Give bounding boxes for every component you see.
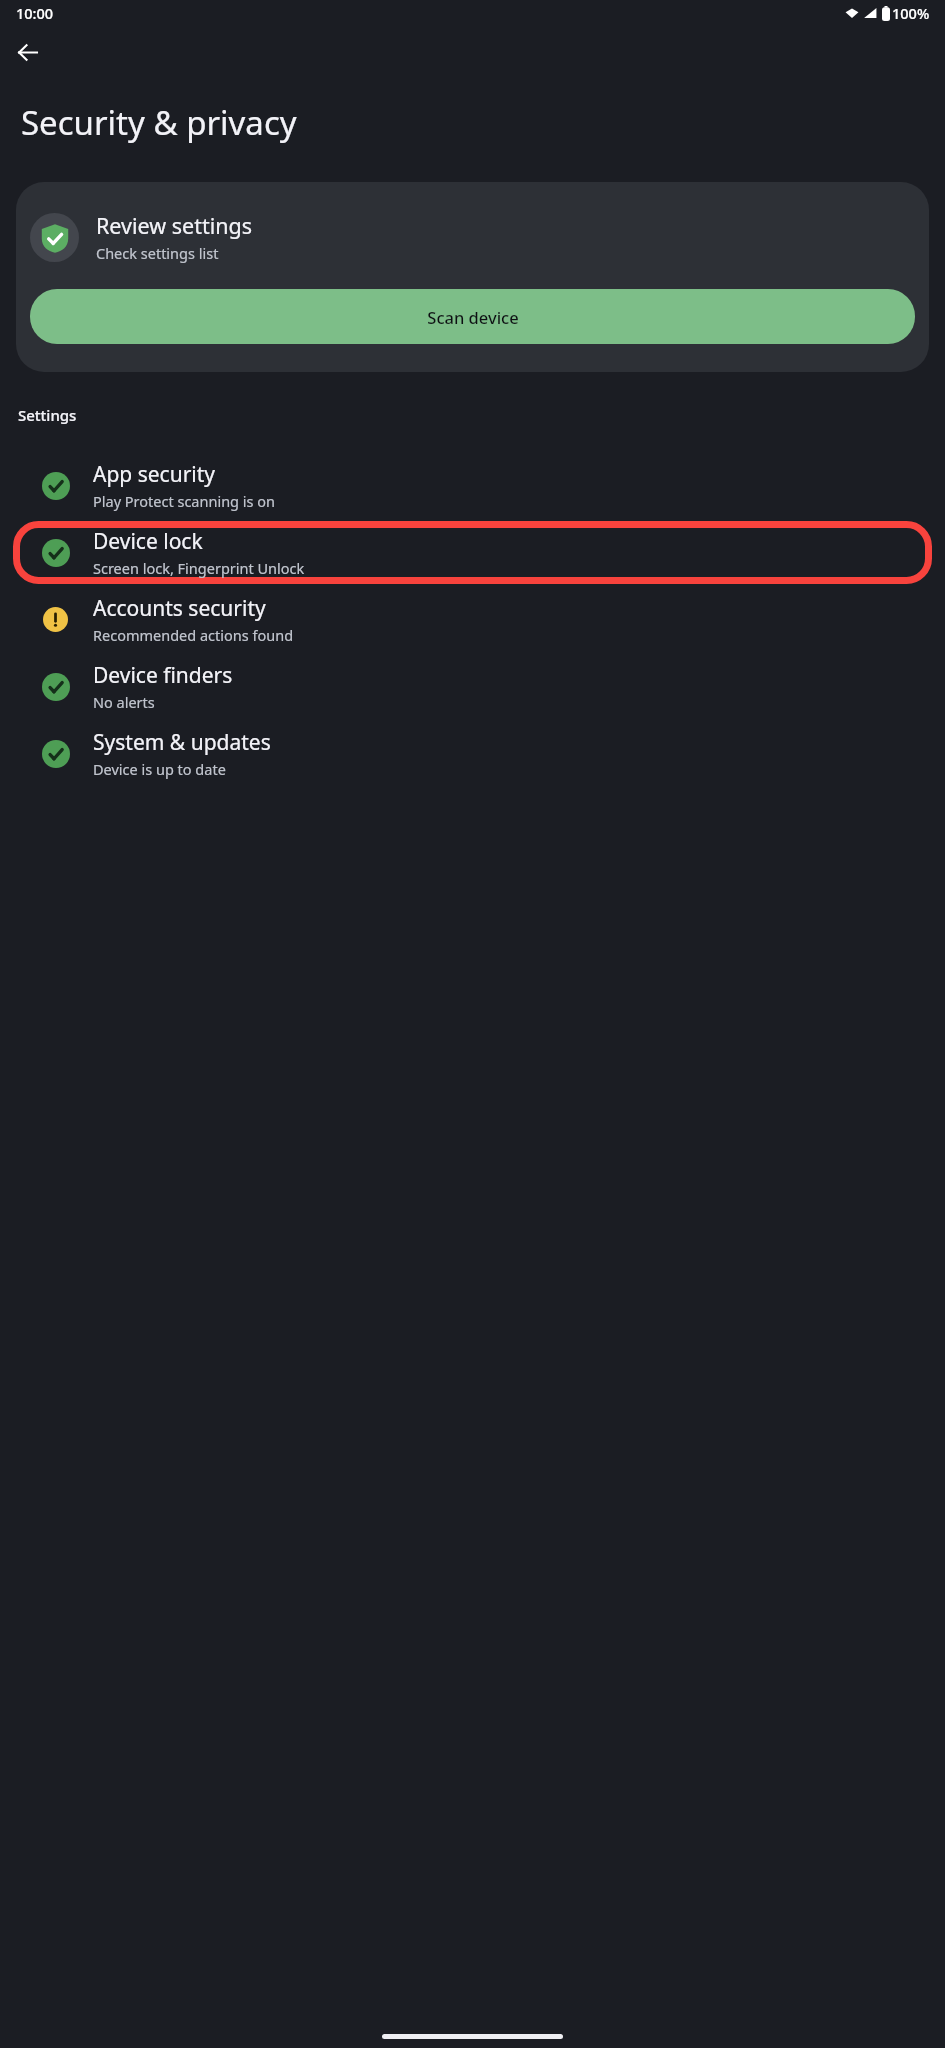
staticText: Recommended actions found <box>93 625 294 645</box>
button[interactable]: Back <box>8 33 46 71</box>
staticText: Scan device <box>427 306 519 328</box>
button[interactable]: Scan device <box>30 289 915 344</box>
button[interactable]: Device finders <box>13 655 932 718</box>
staticText: No alerts <box>93 692 155 712</box>
button[interactable]: Review settings <box>16 182 929 372</box>
staticText: Accounts security <box>93 594 266 623</box>
staticText: Check settings list <box>96 243 219 263</box>
staticText: 100% <box>892 3 930 23</box>
staticText: Review settings <box>96 211 253 240</box>
button[interactable]: System & updates <box>13 722 932 785</box>
button[interactable]: App security <box>13 454 932 517</box>
staticText: System & updates <box>93 728 271 757</box>
staticText: 10:00 <box>16 3 54 23</box>
staticText: Device finders <box>93 661 233 690</box>
staticText: App security <box>93 460 216 489</box>
staticText: Device is up to date <box>93 759 226 779</box>
staticText: Screen lock, Fingerprint Unlock <box>93 558 305 578</box>
staticText: Play Protect scanning is on <box>93 491 275 511</box>
button[interactable]: Accounts security <box>13 588 932 651</box>
staticText: Security & privacy <box>21 100 297 145</box>
staticText: Settings <box>18 405 77 425</box>
button[interactable]: Device lock <box>13 521 932 584</box>
staticText: Device lock <box>93 527 203 556</box>
